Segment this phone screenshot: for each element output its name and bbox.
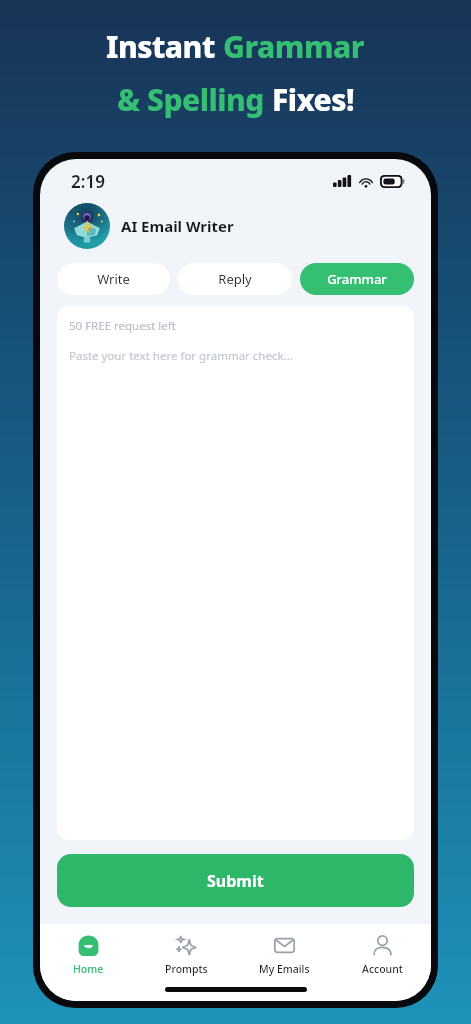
staticText: Submit [207,870,264,892]
staticText: Grammar [327,270,387,288]
staticText: Write [97,270,130,288]
staticText: Prompts [165,962,208,976]
staticText: Fixes! [272,79,355,120]
button[interactable]: Write [57,263,170,295]
staticText: 50 FREE request left [69,318,176,334]
staticText: Home [73,962,104,976]
button[interactable]: Submit [57,854,414,907]
staticText: Account [362,962,403,976]
button[interactable]: Grammar [300,263,414,295]
staticText: & Spelling [117,79,272,120]
staticText: 2:19 [71,170,105,193]
button[interactable]: Home [40,934,137,976]
staticText: Grammar [223,26,365,67]
staticText: Paste your text here for grammar check..… [69,348,293,364]
staticText: My Emails [259,962,310,976]
button[interactable]: 50 FREE request left [57,306,414,840]
staticText: Reply [218,270,252,288]
button[interactable]: Reply [178,263,292,295]
button[interactable]: Account [333,934,431,976]
button[interactable]: My Emails [235,934,333,976]
staticText: Instant [106,26,223,67]
staticText: AI Email Writer [121,216,234,236]
button[interactable]: Prompts [137,934,235,976]
